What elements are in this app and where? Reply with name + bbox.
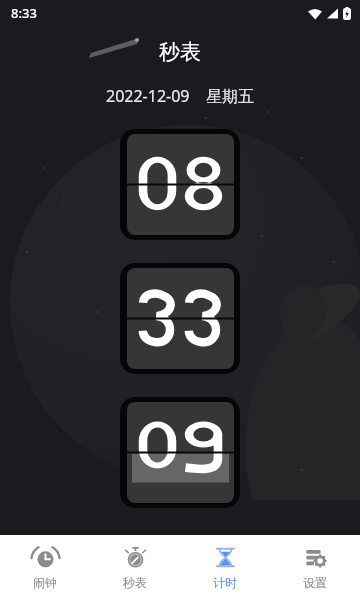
button[interactable] (120, 263, 240, 374)
staticText: 设置 (303, 575, 327, 590)
staticText: 2022-12-09 星期五 (106, 85, 255, 107)
button[interactable] (120, 129, 240, 240)
staticText: 秒表 (123, 575, 147, 590)
button[interactable]: 闹钟 (0, 535, 90, 600)
staticText: 闹钟 (33, 575, 57, 590)
button[interactable]: 秒表 (90, 535, 180, 600)
button[interactable]: 计时 (180, 535, 270, 600)
button[interactable]: 设置 (270, 535, 360, 600)
button[interactable] (120, 397, 240, 508)
staticText: 秒表 (159, 39, 201, 65)
staticText: 计时 (213, 575, 237, 590)
staticText: 8:33 (11, 4, 37, 22)
